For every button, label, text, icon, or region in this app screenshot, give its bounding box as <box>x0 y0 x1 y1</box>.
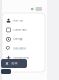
button[interactable]: Settings <box>2 35 45 44</box>
button[interactable]: Log out <box>1 59 27 68</box>
button[interactable]: Information set <box>2 53 45 62</box>
staticText: Log out <box>11 62 18 65</box>
button[interactable]: New chat <box>2 16 45 25</box>
button[interactable]: Custom data <box>2 25 45 35</box>
staticText: Information set <box>13 56 29 59</box>
staticText: New chat <box>13 19 23 22</box>
button[interactable]: Data control <box>2 44 45 53</box>
staticText: Data control <box>13 47 26 50</box>
staticText: Custom data <box>13 28 26 31</box>
staticText: Settings <box>13 38 22 41</box>
